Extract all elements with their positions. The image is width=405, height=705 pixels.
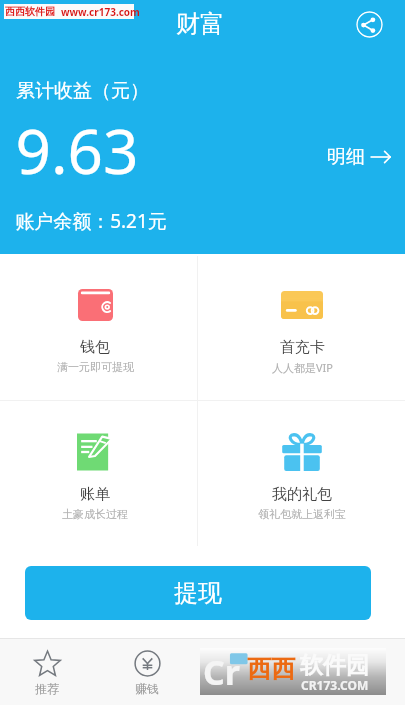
staticText: 财富 bbox=[176, 9, 224, 39]
staticText: 软件园 bbox=[300, 651, 369, 680]
staticText: 西西软件园 bbox=[5, 5, 55, 18]
staticText: 财富 bbox=[236, 681, 260, 696]
button[interactable]: 首充卡 bbox=[201, 256, 403, 400]
staticText: 我的礼包 bbox=[272, 485, 332, 504]
staticText: 提现 bbox=[174, 578, 222, 608]
staticText: 赚钱 bbox=[135, 681, 159, 696]
staticText: 首充卡 bbox=[280, 338, 325, 357]
staticText: 钱包 bbox=[80, 338, 110, 357]
button[interactable]: 我的礼包 bbox=[201, 401, 403, 545]
staticText: 累计收益（元） bbox=[16, 79, 149, 103]
button[interactable]: 明细 bbox=[327, 145, 391, 169]
staticText: Cr bbox=[203, 649, 241, 695]
button[interactable]: 账单 bbox=[0, 401, 196, 545]
staticText: www.cr173.com bbox=[61, 5, 140, 19]
button[interactable]: 我 bbox=[298, 639, 398, 705]
staticText: 土豪成长过程 bbox=[62, 507, 128, 521]
button[interactable]: 推荐 bbox=[0, 639, 97, 705]
button[interactable]: 赚钱 bbox=[97, 639, 197, 705]
button[interactable]: Share bbox=[356, 11, 383, 38]
staticText: 明细 bbox=[327, 145, 365, 169]
button[interactable]: 钱包 bbox=[0, 256, 196, 400]
staticText: 账单 bbox=[80, 485, 110, 504]
staticText: 我 bbox=[342, 681, 354, 696]
staticText: 账户余额：5.21元 bbox=[15, 208, 167, 234]
staticText: 满一元即可提现 bbox=[57, 360, 134, 374]
staticText: 西西 bbox=[247, 654, 295, 684]
staticText: 9.63 bbox=[15, 108, 139, 192]
button[interactable]: 提现 bbox=[25, 566, 371, 620]
staticText: 推荐 bbox=[35, 681, 59, 696]
staticText: 领礼包就上返利宝 bbox=[258, 507, 346, 521]
button[interactable]: 财富 bbox=[198, 639, 298, 705]
staticText: 人人都是VIP bbox=[272, 360, 333, 375]
staticText: CR173.COM bbox=[301, 677, 369, 693]
